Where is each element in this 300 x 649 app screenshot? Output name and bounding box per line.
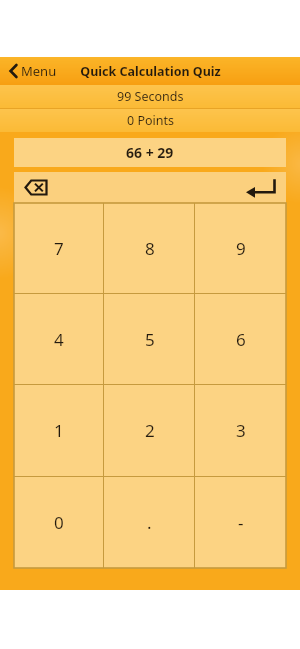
- staticText: 0: [54, 511, 64, 534]
- button[interactable]: 9: [195, 203, 286, 293]
- staticText: 9: [236, 237, 246, 260]
- staticText: -: [238, 511, 244, 534]
- staticText: 5: [145, 328, 155, 351]
- button[interactable]: 6: [195, 294, 286, 384]
- button[interactable]: 7: [14, 203, 104, 293]
- button[interactable]: Menu: [0, 57, 67, 85]
- staticText: 6: [236, 328, 246, 351]
- staticText: Quick Calculation Quiz: [80, 63, 221, 80]
- staticText: 4: [54, 328, 64, 351]
- button[interactable]: 4: [14, 294, 104, 384]
- button[interactable]: 0: [14, 477, 104, 568]
- button[interactable]: Enter: [236, 172, 286, 203]
- button[interactable]: 3: [195, 385, 286, 476]
- staticText: 0 Points: [127, 112, 174, 129]
- button[interactable]: 5: [104, 294, 195, 384]
- button[interactable]: 1: [14, 385, 104, 476]
- staticText: 99 Seconds: [117, 88, 184, 105]
- staticText: 66 + 29: [126, 143, 174, 162]
- button[interactable]: .: [104, 477, 195, 568]
- staticText: 7: [54, 237, 64, 260]
- staticText: 3: [236, 419, 246, 442]
- button[interactable]: 2: [104, 385, 195, 476]
- staticText: 8: [145, 237, 155, 260]
- staticText: .: [147, 511, 152, 534]
- staticText: Menu: [21, 62, 57, 80]
- button[interactable]: -: [195, 477, 286, 568]
- button[interactable]: 8: [104, 203, 195, 293]
- button[interactable]: Backspace: [14, 172, 58, 203]
- staticText: 2: [145, 419, 155, 442]
- staticText: 1: [54, 419, 64, 442]
